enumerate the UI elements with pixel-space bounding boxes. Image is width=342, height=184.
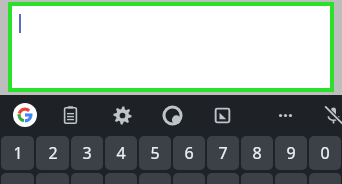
staticText: 9 xyxy=(286,142,296,164)
button[interactable]: 5 xyxy=(139,136,171,170)
button[interactable]: More options xyxy=(265,95,305,135)
button[interactable]: 7 xyxy=(207,136,239,170)
button[interactable]: Google search xyxy=(5,95,45,135)
staticText: 5 xyxy=(150,142,160,164)
staticText: 3 xyxy=(82,142,92,164)
staticText: 0 xyxy=(320,142,330,164)
button[interactable] xyxy=(173,173,205,184)
button[interactable] xyxy=(139,173,171,184)
staticText: 4 xyxy=(116,142,126,164)
button[interactable]: 0 xyxy=(309,136,341,170)
staticText: 7 xyxy=(218,142,228,164)
staticText: 2 xyxy=(48,142,58,164)
button[interactable] xyxy=(36,173,69,184)
button[interactable] xyxy=(12,6,330,88)
button[interactable]: Settings xyxy=(102,95,142,135)
button[interactable] xyxy=(105,173,137,184)
button[interactable]: Voice input off xyxy=(313,95,342,135)
button[interactable] xyxy=(309,173,341,184)
button[interactable]: 1 xyxy=(1,136,34,170)
button[interactable]: Clipboard xyxy=(50,95,90,135)
staticText: 8 xyxy=(252,142,262,164)
button[interactable]: 9 xyxy=(275,136,307,170)
button[interactable] xyxy=(71,173,103,184)
button[interactable]: 6 xyxy=(173,136,205,170)
button[interactable] xyxy=(241,173,273,184)
button[interactable]: 4 xyxy=(105,136,137,170)
button[interactable]: Stickers xyxy=(202,95,242,135)
staticText: 1 xyxy=(13,142,23,164)
button[interactable]: Themes xyxy=(152,95,192,135)
staticText: 6 xyxy=(184,142,194,164)
button[interactable]: 3 xyxy=(71,136,103,170)
button[interactable] xyxy=(207,173,239,184)
button[interactable] xyxy=(1,173,34,184)
button[interactable]: 2 xyxy=(36,136,69,170)
button[interactable] xyxy=(275,173,307,184)
button[interactable]: 8 xyxy=(241,136,273,170)
